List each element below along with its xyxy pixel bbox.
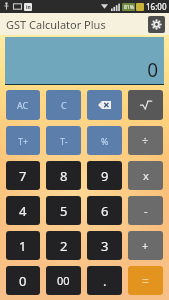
button[interactable]: T+ — [6, 126, 40, 155]
button[interactable]: 4 — [6, 196, 40, 225]
staticText: ÷ — [142, 133, 149, 148]
staticText: - — [144, 203, 148, 218]
button[interactable]: x — [128, 161, 163, 190]
button[interactable]: C — [46, 90, 81, 120]
staticText: 8 — [60, 167, 68, 185]
button[interactable]: . — [87, 266, 122, 295]
button[interactable]: T- — [46, 126, 81, 155]
button[interactable]: + — [128, 231, 163, 260]
staticText: = — [142, 273, 149, 289]
staticText: 2 — [60, 237, 68, 255]
button[interactable]: 5 — [46, 196, 81, 225]
button[interactable]: % — [87, 126, 122, 155]
staticText: T- — [60, 135, 68, 147]
staticText: 3 — [101, 237, 109, 255]
staticText: in — [26, 4, 31, 11]
button[interactable]: 3 — [87, 231, 122, 260]
staticText: 1 — [19, 237, 27, 255]
staticText: % — [101, 135, 109, 147]
staticText: 16:00 — [146, 1, 167, 12]
staticText: 5 — [60, 202, 68, 220]
button[interactable]: ÷ — [128, 126, 163, 155]
staticText: T+ — [18, 135, 29, 147]
button[interactable]: Square root — [128, 90, 163, 120]
button[interactable]: AC — [6, 90, 40, 120]
button[interactable]: Settings — [148, 16, 165, 33]
staticText: 6 — [101, 202, 109, 220]
staticText: x — [143, 168, 149, 183]
button[interactable]: 8 — [46, 161, 81, 190]
button[interactable]: 6 — [87, 196, 122, 225]
staticText: 0 — [19, 272, 27, 290]
staticText: C — [61, 99, 67, 111]
button[interactable]: = — [128, 266, 163, 295]
button[interactable]: 9 — [87, 161, 122, 190]
staticText: . — [103, 272, 107, 290]
staticText: GST Calculator Plus — [6, 17, 106, 32]
button[interactable]: 7 — [6, 161, 40, 190]
staticText: 81% — [124, 4, 134, 11]
button[interactable]: 0 — [5, 37, 164, 85]
staticText: 00 — [57, 273, 70, 288]
button[interactable]: - — [128, 196, 163, 225]
staticText: 7 — [19, 167, 27, 185]
button[interactable]: Backspace — [87, 90, 122, 120]
button[interactable]: 00 — [46, 266, 81, 295]
button[interactable]: 0 — [6, 266, 40, 295]
staticText: 4 — [19, 202, 27, 220]
staticText: + — [142, 238, 149, 253]
staticText: AC — [17, 99, 29, 111]
button[interactable]: 2 — [46, 231, 81, 260]
staticText: 0 — [147, 57, 158, 83]
button[interactable]: 1 — [6, 231, 40, 260]
staticText: 9 — [101, 167, 109, 185]
